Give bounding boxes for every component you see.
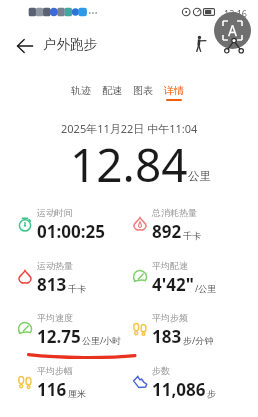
button[interactable]: 步数	[133, 364, 253, 400]
button[interactable]: 平均配速	[133, 259, 253, 295]
staticText: 配速	[102, 84, 122, 97]
button[interactable]: 平均速度	[18, 311, 128, 347]
staticText: 01:00:25	[37, 220, 105, 243]
staticText: 2025年11月22日 中午11:04	[61, 121, 198, 136]
staticText: 千卡	[183, 230, 201, 241]
staticText: 轨迹	[71, 84, 91, 97]
staticText: 892	[152, 220, 182, 243]
staticText: 千卡	[68, 283, 86, 294]
staticText: 公里/小时	[82, 334, 122, 346]
staticText: 图表	[133, 84, 153, 97]
staticText: 12.84	[70, 133, 188, 196]
button[interactable]: 详情	[164, 84, 184, 101]
staticText: 183	[152, 325, 182, 348]
button[interactable]: 运动时间	[18, 206, 128, 242]
staticText: 813	[37, 273, 67, 296]
button[interactable]: Back	[14, 35, 36, 57]
button[interactable]: 平均步幅	[18, 364, 128, 400]
button[interactable]: 总消耗热量	[133, 206, 253, 242]
staticText: 厘米	[68, 388, 86, 399]
staticText: 116	[37, 378, 67, 401]
button[interactable]: 图表	[133, 84, 153, 101]
staticText: 平均步频	[152, 312, 188, 323]
button[interactable]: 运动热量	[18, 259, 128, 295]
staticText: 运动热量	[37, 260, 73, 271]
staticText: 步/分钟	[183, 334, 214, 346]
staticText: 平均速度	[37, 312, 73, 323]
staticText: 详情	[164, 84, 184, 97]
button[interactable]: 配速	[102, 84, 122, 101]
button[interactable]: 平均步频	[133, 311, 253, 347]
button[interactable]: Screenshot	[214, 12, 251, 49]
staticText: 4'42"	[152, 273, 194, 296]
staticText: 步	[207, 388, 216, 399]
staticText: /公里	[195, 282, 217, 294]
staticText: 总消耗热量	[152, 207, 197, 218]
staticText: 运动时间	[37, 207, 73, 218]
staticText: 户外跑步	[43, 36, 97, 53]
staticText: 平均配速	[152, 260, 188, 271]
staticText: 平均步幅	[37, 365, 73, 376]
button[interactable]: 轨迹	[71, 84, 91, 101]
staticText: 11,086	[152, 378, 206, 401]
staticText: 12:16	[224, 7, 248, 19]
staticText: 公里	[188, 169, 211, 183]
staticText: 12.75	[37, 325, 81, 348]
staticText: 步数	[152, 365, 170, 376]
